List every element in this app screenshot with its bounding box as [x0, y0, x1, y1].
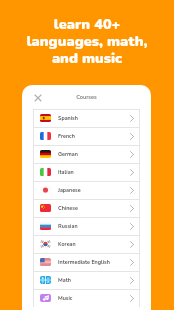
button[interactable]: French [33, 127, 140, 145]
staticText: Music [58, 295, 73, 302]
button[interactable]: Chinese [33, 199, 140, 217]
button[interactable]: Close [33, 93, 43, 103]
button[interactable]: Italian [33, 163, 140, 181]
staticText: Courses [22, 93, 151, 101]
button[interactable]: Math [33, 271, 140, 289]
button[interactable]: Intermediate English [33, 253, 140, 271]
button[interactable]: Japanese [33, 181, 140, 199]
staticText: Math [58, 277, 71, 284]
staticText: Chinese [58, 205, 78, 212]
button[interactable]: Music [33, 289, 140, 307]
button[interactable]: German [33, 145, 140, 163]
staticText: Italian [58, 169, 74, 176]
staticText: Japanese [58, 187, 81, 194]
button[interactable]: Korean [33, 235, 140, 253]
staticText: Intermediate English [58, 259, 110, 266]
staticText: learn 40+ languages, math, and music [0, 14, 174, 68]
button[interactable]: Russian [33, 217, 140, 235]
staticText: Korean [58, 241, 76, 248]
staticText: Russian [58, 223, 78, 230]
staticText: German [58, 151, 78, 158]
staticText: French [58, 133, 75, 140]
staticText: Spanish [58, 115, 78, 122]
button[interactable]: Spanish [33, 109, 140, 127]
